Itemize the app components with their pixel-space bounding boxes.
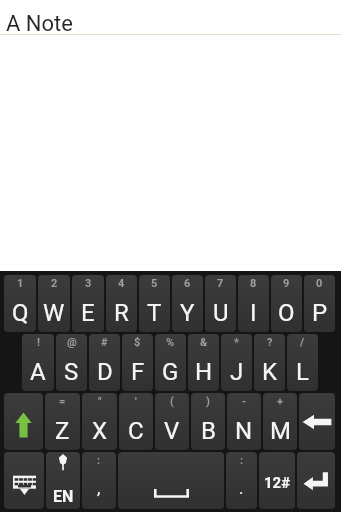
staticText: G	[162, 358, 179, 386]
staticText: +	[277, 395, 283, 408]
staticText: H	[195, 358, 213, 386]
button[interactable]: 12#	[259, 452, 295, 509]
button[interactable]: Shift	[4, 393, 43, 450]
staticText: C	[128, 417, 144, 445]
staticText: EN	[53, 487, 74, 506]
button[interactable]: Input language EN	[46, 452, 80, 509]
staticText: @	[67, 336, 77, 349]
staticText: !	[37, 336, 40, 349]
button[interactable]: :	[226, 452, 257, 509]
staticText: A	[30, 358, 46, 386]
staticText: 3	[85, 277, 92, 290]
button[interactable]: &	[188, 334, 219, 391]
button[interactable]: Enter	[297, 452, 335, 509]
staticText: K	[262, 358, 278, 386]
button[interactable]: :	[82, 452, 116, 509]
staticText: :	[97, 454, 101, 467]
button[interactable]: 2	[38, 275, 70, 332]
staticText: /	[300, 336, 305, 349]
staticText: #	[101, 336, 108, 349]
staticText: S	[64, 358, 79, 386]
staticText: '	[135, 395, 137, 408]
staticText: 7	[217, 277, 224, 290]
button[interactable]: 0	[304, 275, 335, 332]
staticText: W	[43, 299, 65, 327]
button[interactable]: "	[82, 393, 117, 450]
staticText: Q	[12, 299, 29, 327]
button[interactable]: +	[263, 393, 297, 450]
button[interactable]: $	[122, 334, 153, 391]
staticText: T	[147, 299, 162, 327]
button[interactable]: 4	[106, 275, 137, 332]
staticText: (	[170, 395, 174, 408]
staticText: Y	[180, 299, 195, 327]
staticText: F	[131, 358, 145, 386]
staticText: 0	[316, 277, 323, 290]
staticText: D	[97, 358, 113, 386]
staticText: N	[235, 417, 253, 445]
button[interactable]: Backspace	[299, 393, 335, 450]
button[interactable]: 3	[72, 275, 104, 332]
staticText: $	[134, 336, 141, 349]
staticText: J	[230, 358, 244, 386]
button[interactable]: =	[45, 393, 80, 450]
button[interactable]: #	[89, 334, 120, 391]
button[interactable]: %	[155, 334, 186, 391]
button[interactable]: (	[155, 393, 189, 450]
button[interactable]: @	[56, 334, 87, 391]
staticText: -	[242, 395, 247, 408]
staticText: P	[312, 299, 328, 327]
button[interactable]: 1	[4, 275, 36, 332]
staticText: =	[59, 395, 66, 408]
button[interactable]: 6	[172, 275, 203, 332]
staticText: Z	[55, 417, 70, 445]
staticText: 2	[51, 277, 58, 290]
staticText: 5	[151, 277, 158, 290]
staticText: %	[166, 336, 175, 349]
button[interactable]: Hide keyboard	[4, 452, 44, 509]
staticText: U	[213, 299, 229, 327]
staticText: 4	[118, 277, 125, 290]
staticText: R	[114, 299, 129, 327]
staticText: 1	[17, 277, 24, 290]
staticText: ?	[267, 336, 273, 349]
button[interactable]: 8	[238, 275, 269, 332]
staticText: V	[164, 417, 180, 445]
staticText: L	[296, 358, 309, 386]
button[interactable]: 5	[139, 275, 170, 332]
button[interactable]: /	[287, 334, 318, 391]
staticText: 12#	[264, 474, 291, 492]
staticText: 8	[250, 277, 257, 290]
button[interactable]: )	[191, 393, 225, 450]
staticText: 9	[283, 277, 290, 290]
staticText: &	[200, 336, 208, 349]
staticText: :	[240, 454, 244, 467]
staticText: B	[201, 417, 216, 445]
staticText: "	[98, 395, 102, 408]
button[interactable]: ?	[254, 334, 285, 391]
button[interactable]: 7	[205, 275, 236, 332]
staticText: M	[270, 417, 291, 445]
staticText: *	[234, 336, 239, 349]
button[interactable]: 9	[271, 275, 302, 332]
staticText: ,	[97, 478, 101, 498]
staticText: O	[278, 299, 295, 327]
button[interactable]: '	[119, 393, 153, 450]
staticText: 6	[184, 277, 191, 290]
staticText: A Note	[6, 11, 73, 37]
staticText: E	[81, 299, 95, 327]
button[interactable]: *	[221, 334, 252, 391]
staticText: .	[239, 478, 244, 498]
staticText: X	[92, 417, 108, 445]
staticText: I	[250, 299, 257, 327]
button[interactable]: !	[22, 334, 54, 391]
button[interactable]: Space	[118, 452, 224, 509]
button[interactable]: -	[227, 393, 261, 450]
staticText: )	[206, 395, 210, 408]
